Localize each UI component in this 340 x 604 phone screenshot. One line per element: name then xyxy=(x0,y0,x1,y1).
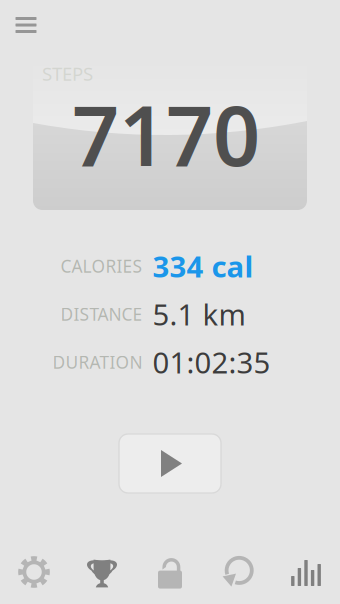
staticText: STEPS xyxy=(42,61,93,86)
button[interactable]: Statistics xyxy=(272,550,340,594)
button[interactable]: Menu xyxy=(6,8,46,42)
button[interactable]: Start xyxy=(119,434,221,493)
staticText: 334 cal xyxy=(152,246,253,285)
staticText: 5.1 km xyxy=(152,294,245,333)
staticText: 7170 xyxy=(72,79,260,189)
button[interactable]: Lock xyxy=(136,550,204,594)
button[interactable]: Achievements xyxy=(68,550,136,594)
staticText: CALORIES xyxy=(60,254,142,277)
staticText: 01:02:35 xyxy=(152,342,270,381)
staticText: DURATION xyxy=(52,350,142,373)
staticText: DISTANCE xyxy=(60,302,142,325)
button[interactable]: Reset xyxy=(204,550,272,594)
button[interactable]: Settings xyxy=(0,550,68,594)
